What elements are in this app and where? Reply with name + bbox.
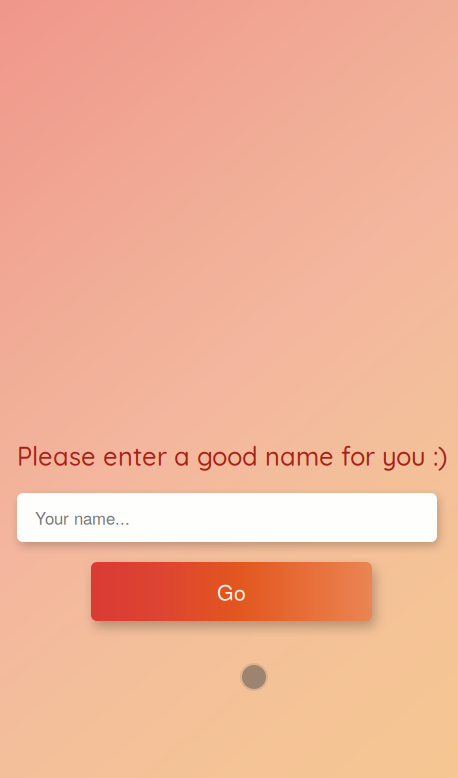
staticText: Go <box>217 576 246 607</box>
staticText: Please enter a good name for you :) <box>17 440 447 472</box>
staticText: Your name... <box>35 506 130 529</box>
button[interactable]: Go <box>91 562 372 621</box>
